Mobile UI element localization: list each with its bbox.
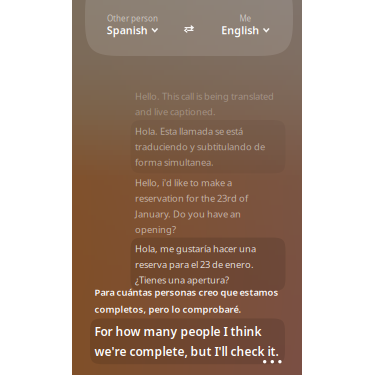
staticText: Para cuántas personas creo que estamos c… (94, 286, 278, 315)
button[interactable]: Other person (85, 14, 180, 44)
staticText: Hola, me gustaría hacer una reserva para… (135, 242, 256, 286)
button[interactable]: Me (198, 14, 293, 44)
staticText: Hello. This call is being translated and… (135, 90, 274, 118)
staticText: Me (239, 13, 251, 24)
staticText: Spanish (107, 23, 148, 37)
staticText: For how many people I think we're comple… (94, 323, 278, 359)
staticText: Hello, i'd like to make a reservation fo… (135, 176, 248, 235)
staticText: English (221, 23, 259, 37)
staticText: Other person (107, 13, 158, 24)
button[interactable]: Swap languages (180, 16, 198, 42)
staticText: Hola. Esta llamada se está traduciendo y… (135, 125, 265, 168)
